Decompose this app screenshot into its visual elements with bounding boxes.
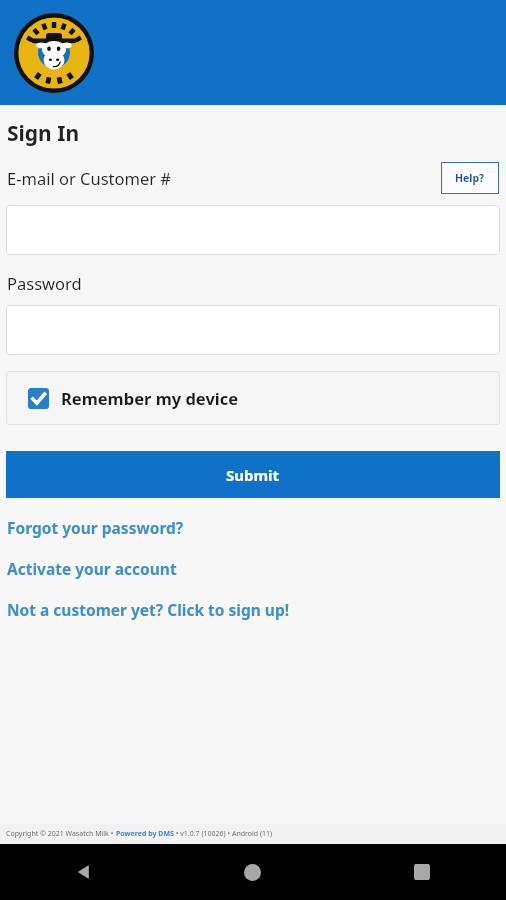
button[interactable]: Recent apps	[337, 844, 506, 900]
staticText: Forgot your password?	[7, 517, 184, 538]
button[interactable]: Not a customer yet? Click to sign up!	[7, 599, 506, 620]
staticText: Copyright © 2021 Wasatch Milk •	[6, 829, 116, 839]
button[interactable]: Forgot your password?	[7, 517, 506, 538]
button[interactable]: Home	[168, 844, 337, 900]
staticText: Submit	[226, 465, 280, 485]
button[interactable]: Remember my device	[6, 371, 500, 425]
staticText: E-mail or Customer #	[7, 167, 172, 189]
staticText: • v1.0.7 (10026) • Android (11)	[174, 829, 273, 839]
staticText: Activate your account	[7, 558, 177, 579]
button[interactable]: Back	[0, 844, 168, 900]
staticText: Powered by DMS	[116, 829, 174, 839]
staticText: Sign In	[7, 119, 80, 148]
button[interactable]	[6, 205, 500, 255]
button[interactable]	[6, 305, 500, 355]
staticText: Help?	[455, 171, 485, 185]
staticText: Password	[7, 272, 82, 294]
staticText: Remember my device	[61, 387, 239, 409]
button[interactable]: Submit	[6, 451, 500, 498]
button[interactable]: Wasatch Milk logo	[14, 13, 94, 93]
button[interactable]: Help?	[441, 162, 499, 194]
staticText: Not a customer yet? Click to sign up!	[7, 599, 290, 620]
button[interactable]: Activate your account	[7, 558, 506, 579]
